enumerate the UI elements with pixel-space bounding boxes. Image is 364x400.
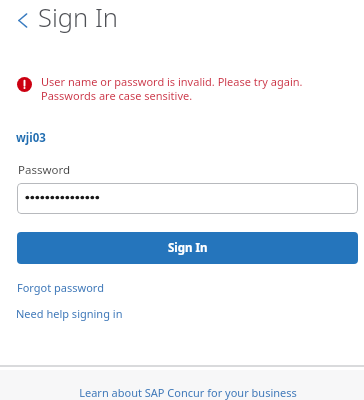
staticText: wji03 (16, 130, 46, 146)
staticText: Sign In (168, 240, 208, 256)
staticText: User name or password is invalid. Please… (41, 74, 303, 103)
button[interactable]: Sign In (17, 232, 358, 264)
staticText: Learn about SAP Concur for your business (79, 385, 297, 400)
staticText: Forgot password (17, 280, 104, 295)
staticText: Password (18, 162, 71, 178)
staticText: Sign In (38, 0, 119, 35)
other: Back (18, 13, 27, 28)
button[interactable]: Need help signing in (16, 306, 123, 321)
staticText: Need help signing in (16, 306, 123, 321)
button[interactable]: Forgot password (17, 280, 104, 295)
button[interactable]: Back (0, 0, 133, 40)
button[interactable]: Learn about SAP Concur for your business (0, 370, 364, 400)
button[interactable]: Password (17, 183, 358, 214)
